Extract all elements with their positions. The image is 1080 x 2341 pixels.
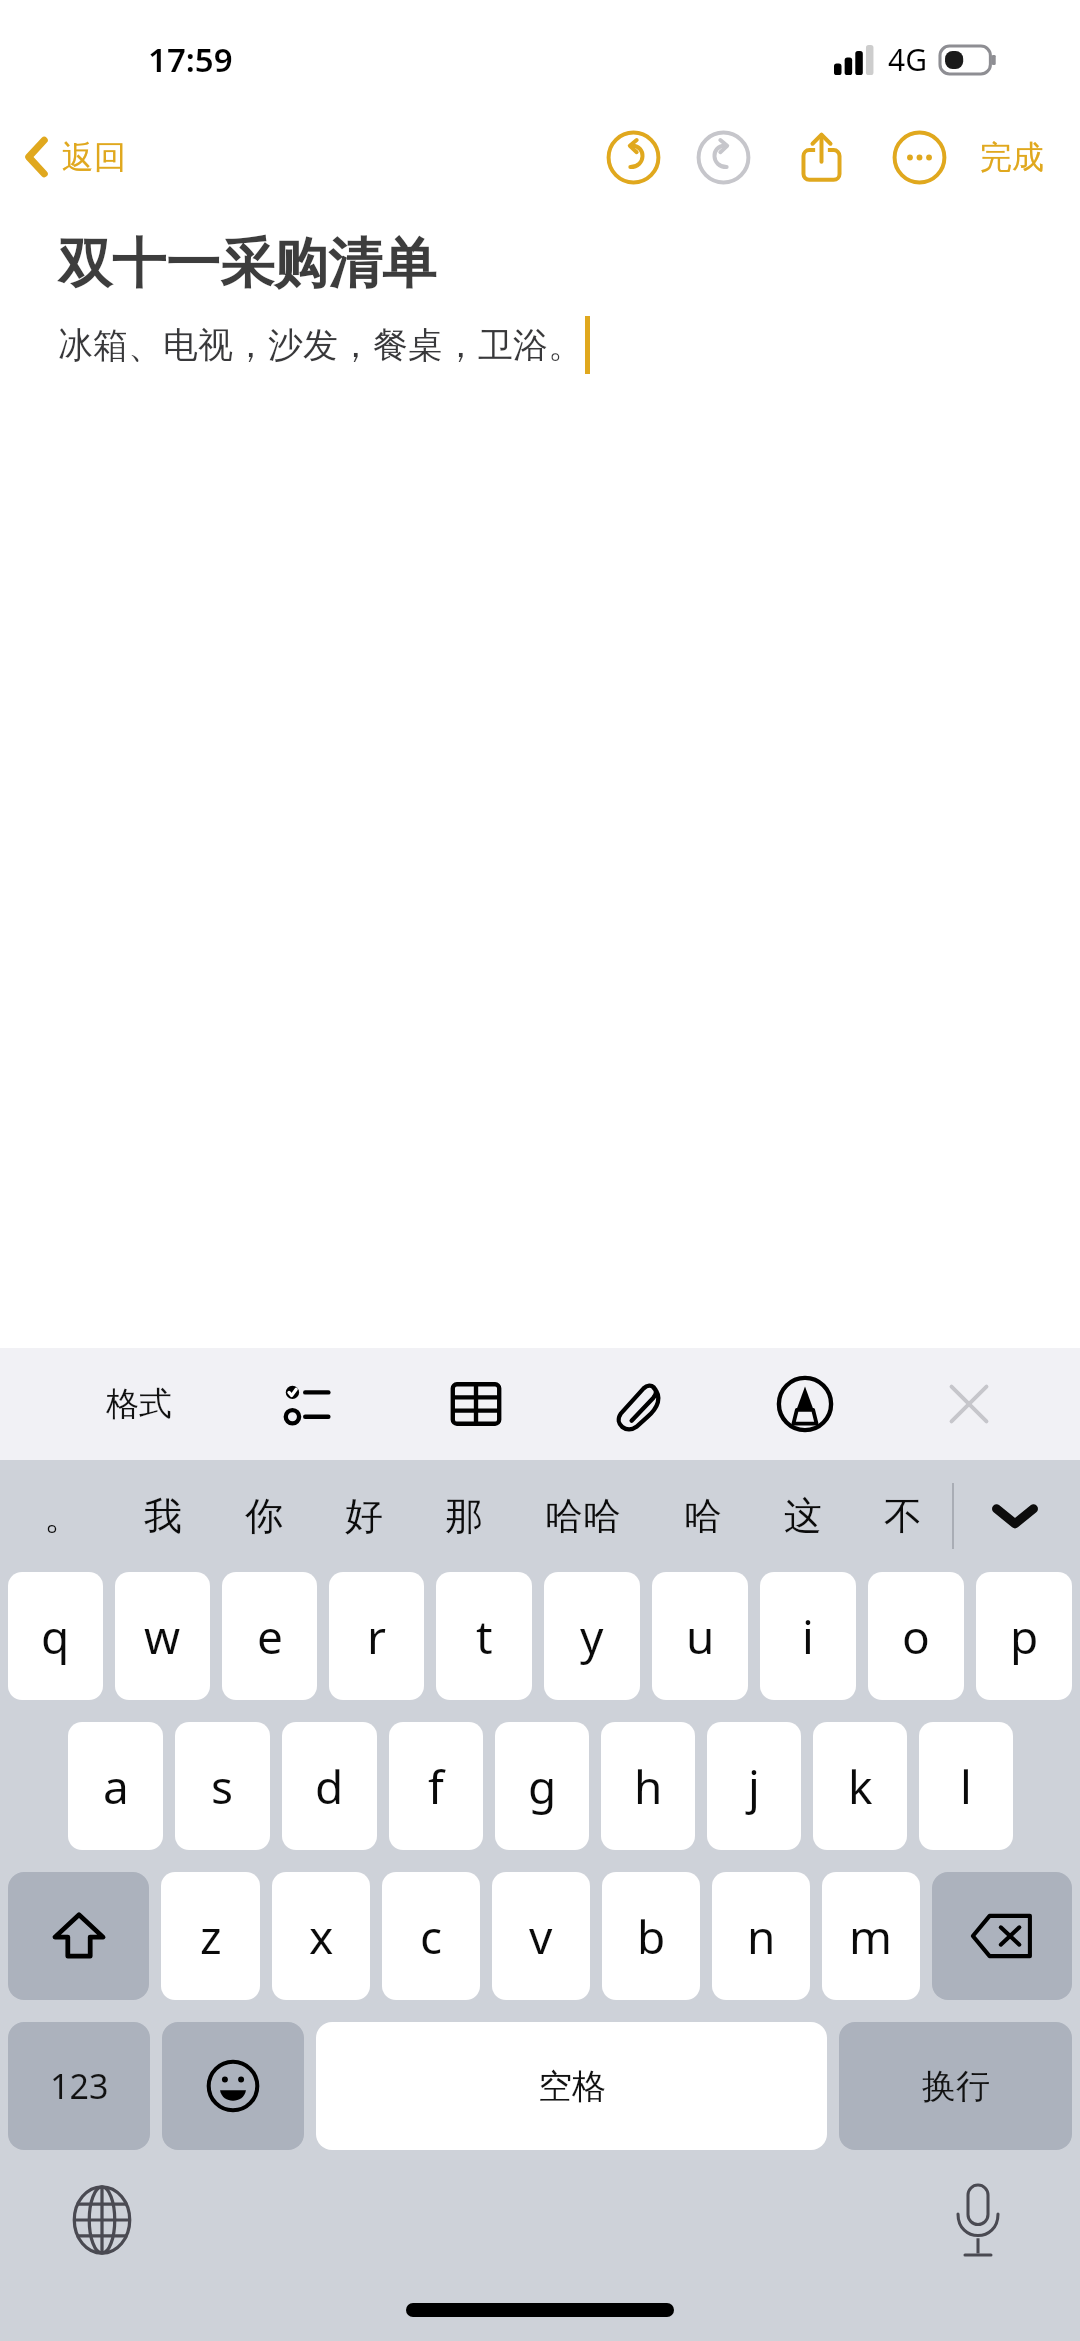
button[interactable]: o [868,1572,964,1700]
button[interactable]: 不 [876,1480,930,1552]
button[interactable]: Table [441,1369,511,1439]
button[interactable]: Attach [605,1369,675,1439]
staticText: p [1010,1605,1039,1668]
button[interactable]: e [222,1572,317,1700]
staticText: s [211,1755,234,1818]
button[interactable]: 我 [136,1480,190,1552]
staticText: y [580,1605,604,1668]
button[interactable]: v [492,1872,590,2000]
button[interactable]: 返回 [0,130,142,184]
staticText: a [103,1755,129,1818]
button[interactable]: i [760,1572,856,1700]
button[interactable]: 这 [776,1480,830,1552]
button[interactable]: More [882,120,956,194]
button[interactable]: h [601,1722,695,1850]
button[interactable]: n [712,1872,810,2000]
button[interactable]: s [175,1722,270,1850]
button[interactable]: 空格 [316,2022,827,2150]
staticText: z [200,1905,222,1968]
staticText: t [476,1605,493,1668]
staticText: o [902,1605,930,1668]
button[interactable]: Backspace [932,1872,1072,2000]
button[interactable]: 格式 [96,1373,182,1435]
button[interactable]: Markup [770,1369,840,1439]
button[interactable]: a [68,1722,163,1850]
button[interactable]: t [436,1572,532,1700]
staticText: u [686,1605,715,1668]
staticText: b [637,1905,666,1968]
staticText: q [41,1605,70,1668]
button[interactable]: 哈哈 [537,1480,629,1552]
staticText: 双十一采购清单 [58,230,436,298]
button[interactable]: x [272,1872,370,2000]
button[interactable]: Redo [686,120,760,194]
button[interactable]: Hide candidates [978,1479,1052,1553]
button[interactable]: Share [784,120,858,194]
staticText: k [848,1755,873,1818]
staticText: n [747,1905,776,1968]
button[interactable]: Close keyboard [934,1369,1004,1439]
button[interactable]: q [8,1572,103,1700]
staticText: 换行 [922,2065,990,2108]
button[interactable]: 换行 [839,2022,1072,2150]
staticText: 哈 [684,1492,722,1540]
staticText: r [367,1605,386,1668]
staticText: x [309,1905,334,1968]
button[interactable]: Undo [596,120,670,194]
button[interactable]: l [919,1722,1013,1850]
staticText: 123 [50,2063,109,2109]
staticText: 不 [884,1492,922,1540]
button[interactable]: c [382,1872,480,2000]
staticText: v [529,1905,553,1968]
button[interactable]: 你 [237,1480,291,1552]
staticText: 那 [445,1492,483,1540]
staticText: i [802,1605,814,1668]
button[interactable]: w [115,1572,210,1700]
staticText: 4G [888,39,927,80]
button[interactable]: r [329,1572,424,1700]
button[interactable]: g [495,1722,589,1850]
staticText: h [634,1755,663,1818]
button[interactable]: m [822,1872,920,2000]
button[interactable]: u [652,1572,748,1700]
button[interactable]: Shift [8,1872,149,2000]
staticText: 这 [784,1492,822,1540]
button[interactable]: 。 [36,1480,90,1552]
staticText: 我 [144,1492,182,1540]
button[interactable]: f [389,1722,483,1850]
button[interactable]: d [282,1722,377,1850]
button[interactable]: k [813,1722,907,1850]
staticText: m [849,1905,893,1968]
button[interactable]: y [544,1572,640,1700]
staticText: d [315,1755,344,1818]
button[interactable]: 完成 [970,129,1054,185]
staticText: 完成 [980,137,1044,177]
staticText: 。 [44,1492,82,1540]
staticText: e [257,1605,283,1668]
staticText: f [428,1755,444,1818]
staticText: c [420,1905,443,1968]
button[interactable]: p [976,1572,1072,1700]
button[interactable]: 123 [8,2022,150,2150]
staticText: 好 [345,1492,383,1540]
button[interactable]: Dictation [938,2180,1018,2260]
staticText: 哈哈 [545,1492,621,1540]
staticText: j [748,1755,760,1818]
button[interactable]: Checklist [276,1369,346,1439]
button[interactable]: b [602,1872,700,2000]
button[interactable]: 哈 [676,1480,730,1552]
button[interactable]: 那 [437,1480,491,1552]
staticText: 空格 [538,2065,606,2108]
button[interactable]: 好 [337,1480,391,1552]
button[interactable]: j [707,1722,801,1850]
staticText: l [960,1755,972,1818]
staticText: 返回 [62,137,126,177]
staticText: 格式 [106,1383,172,1425]
staticText: w [144,1605,181,1668]
staticText: 冰箱、电视，沙发，餐桌，卫浴。 [58,323,583,367]
button[interactable]: z [161,1872,260,2000]
staticText: 17:59 [148,37,233,82]
button[interactable]: Switch language [62,2180,142,2260]
staticText: g [528,1755,557,1818]
button[interactable]: Emoji [162,2022,304,2150]
